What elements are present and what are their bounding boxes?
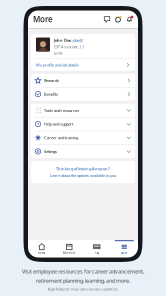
button[interactable]: Schedule xyxy=(55,240,83,255)
button[interactable]: Help and support xyxy=(31,117,135,131)
staticText: Visit employee resources for career adva… xyxy=(22,268,144,275)
staticText: Home xyxy=(38,251,46,255)
staticText: Settings xyxy=(44,149,57,154)
button[interactable]: Pay xyxy=(83,240,110,255)
button[interactable]: More xyxy=(110,240,138,255)
staticText: jdoe@ xyxy=(72,37,83,43)
staticText: retirement planning, learning, and more. xyxy=(36,277,130,284)
staticText: More xyxy=(121,251,128,255)
button[interactable]: Tools and resources xyxy=(31,104,135,117)
staticText: John Doe xyxy=(54,37,71,43)
button[interactable]: Notifications xyxy=(127,16,133,22)
button[interactable]: My profile and job details xyxy=(31,59,135,71)
button[interactable]: Career and training xyxy=(31,131,135,144)
button[interactable]: Home xyxy=(28,240,55,255)
staticText: Learn about the options available to you xyxy=(50,173,116,178)
button[interactable]: Benefits xyxy=(31,87,135,101)
button[interactable]: Rewards xyxy=(31,74,135,87)
button[interactable]: Settings xyxy=(31,145,135,158)
staticText: ESP Associate, L1 xyxy=(54,44,84,49)
button[interactable]: Thinking of leaving Amazon? xyxy=(31,161,135,183)
staticText: BFM xyxy=(54,50,63,56)
staticText: Thinking of leaving Amazon? xyxy=(56,166,110,171)
button[interactable]: Messages xyxy=(104,16,110,22)
staticText: App features may vary across countries. xyxy=(47,286,118,291)
staticText: My profile and job details xyxy=(36,62,79,67)
staticText: Rewards xyxy=(44,78,59,83)
staticText: Schedule xyxy=(63,251,76,255)
staticText: Tools and resources xyxy=(44,108,79,113)
button[interactable]: Rewards xyxy=(115,16,122,22)
staticText: Career and training xyxy=(44,135,78,140)
staticText: Benefits xyxy=(44,91,58,97)
staticText: More xyxy=(33,14,53,24)
staticText: Pay xyxy=(95,251,99,255)
staticText: Help and support xyxy=(44,121,73,127)
